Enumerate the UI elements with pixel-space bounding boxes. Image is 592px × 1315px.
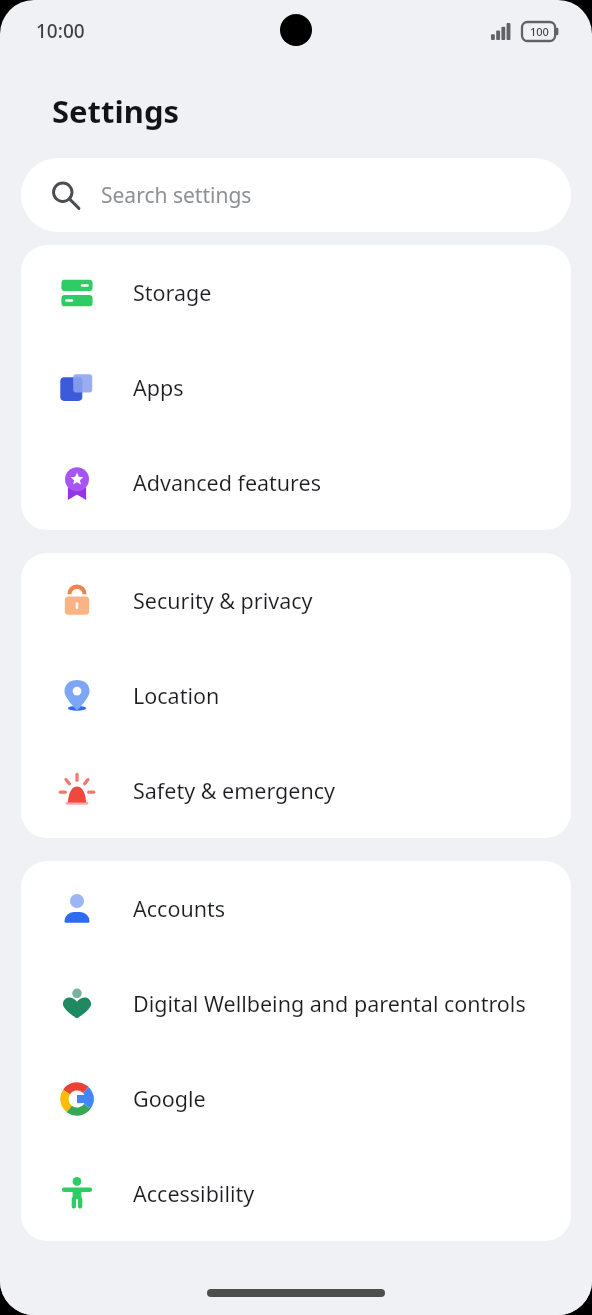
button[interactable]: Apps [21, 340, 571, 435]
button[interactable]: Digital Wellbeing [21, 956, 571, 1051]
staticText: Accessibility [133, 1179, 255, 1208]
button[interactable]: Search settings [21, 158, 571, 232]
other: Safety and emergency [58, 772, 96, 810]
button[interactable]: Google [21, 1051, 571, 1146]
staticText: Safety & emergency [133, 776, 335, 805]
button[interactable]: Security and privacy [21, 553, 571, 648]
staticText: Storage [133, 278, 212, 307]
staticText: Search settings [101, 181, 252, 210]
other: Storage [58, 274, 96, 312]
staticText: 100 [530, 24, 549, 39]
staticText: 10:00 [36, 18, 85, 44]
button[interactable]: Advanced features [21, 435, 571, 530]
other: Accessibility [58, 1175, 96, 1213]
staticText: Security & privacy [133, 586, 313, 615]
button[interactable]: Storage [21, 245, 571, 340]
other: Apps [58, 369, 96, 407]
button[interactable]: Accessibility [21, 1146, 571, 1241]
staticText: Google [133, 1084, 206, 1113]
staticText: Digital Wellbeing and parental controls [133, 989, 526, 1018]
button[interactable]: Location [21, 648, 571, 743]
other: Google [58, 1080, 96, 1118]
other: Security and privacy [58, 582, 96, 620]
staticText: Settings [52, 90, 180, 132]
other: Accounts [58, 890, 96, 928]
button[interactable]: Accounts [21, 861, 571, 956]
other: Advanced features [58, 464, 96, 502]
button[interactable]: Safety and emergency [21, 743, 571, 838]
staticText: Apps [133, 373, 184, 402]
other: Location [58, 677, 96, 715]
staticText: Location [133, 681, 220, 710]
other: Digital Wellbeing [58, 985, 96, 1023]
staticText: Advanced features [133, 468, 321, 497]
staticText: Accounts [133, 894, 226, 923]
